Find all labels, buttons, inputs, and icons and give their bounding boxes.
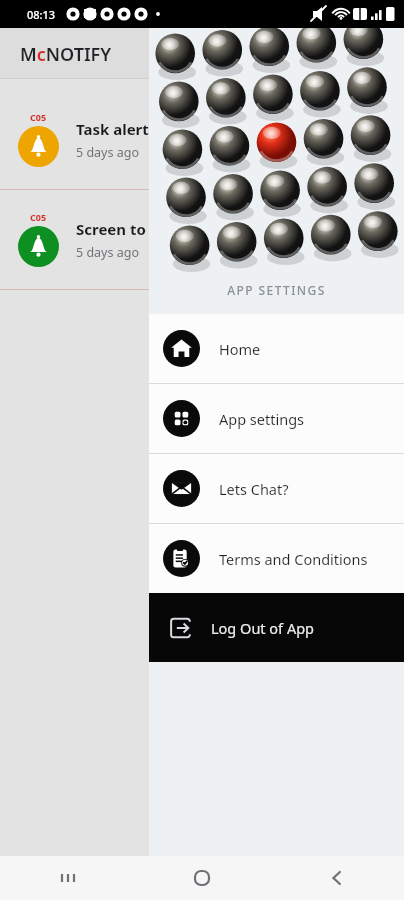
staticText: C05 [30,211,47,223]
staticText: 5 days ago [76,144,139,161]
button[interactable]: ALERTS [0,856,101,900]
button[interactable]: HISTORY [101,856,202,900]
staticText: Lets Chat? [219,479,289,499]
staticText: Task alert [76,119,149,139]
button[interactable]: Back [269,856,404,900]
staticText: Screen to [76,219,146,239]
staticText: Log Out of App [211,618,314,638]
staticText: McNOTIFY [20,42,112,67]
button[interactable]: Log Out of App [149,593,404,662]
staticText: 08:13 [27,7,56,22]
button[interactable]: C05 [0,90,404,189]
button[interactable]: C05 [0,190,404,289]
staticText: APP SETTINGS [227,282,326,298]
button[interactable]: Recents [0,856,134,900]
staticText: C05 [30,111,47,123]
button[interactable]: Terms and Conditions [149,524,404,593]
staticText: Terms and Conditions [219,549,368,569]
button[interactable]: Home [149,314,404,383]
staticText: App settings [219,409,305,429]
button[interactable]: Lets Chat? [149,454,404,523]
staticText: Home [219,339,261,359]
staticText: 5 days ago [76,244,139,261]
button[interactable] [303,856,404,900]
button[interactable]: App settings [149,384,404,453]
button[interactable] [202,856,303,900]
button[interactable]: Home [134,856,269,900]
